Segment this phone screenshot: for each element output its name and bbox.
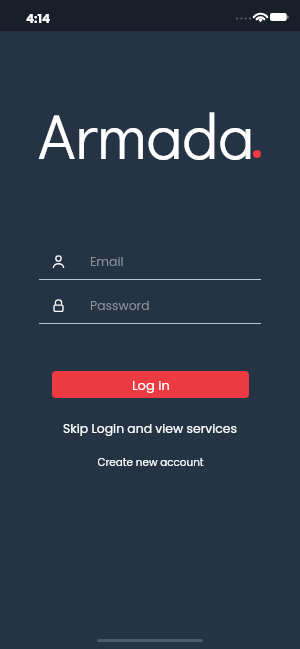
- other: Password: [52, 299, 65, 312]
- other: Email: [52, 255, 65, 268]
- button[interactable]: Email: [39, 248, 261, 274]
- button[interactable]: Create new account: [0, 452, 300, 473]
- staticText: Skip Login and view services: [63, 420, 237, 437]
- button[interactable]: Log in: [52, 371, 249, 398]
- staticText: Create new account: [97, 455, 204, 470]
- staticText: Armada: [38, 92, 255, 176]
- button[interactable]: Password: [39, 292, 261, 318]
- staticText: 4:14: [26, 10, 51, 27]
- staticText: Password: [90, 297, 150, 314]
- staticText: Log in: [132, 376, 170, 394]
- button[interactable]: Skip Login and view services: [0, 417, 300, 440]
- staticText: Email: [90, 253, 124, 270]
